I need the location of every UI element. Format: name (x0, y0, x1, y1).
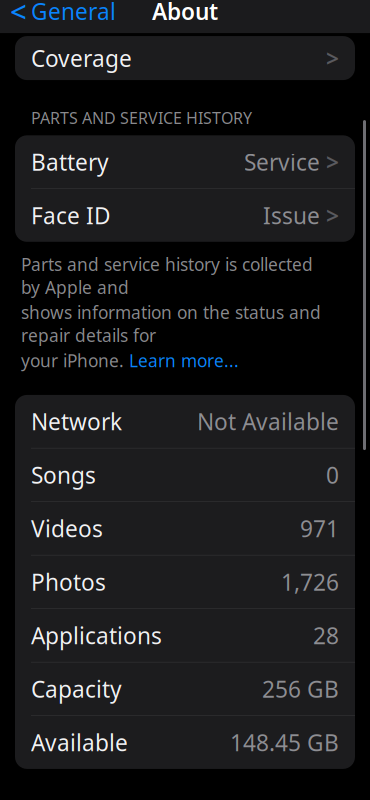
staticText: PARTS AND SERVICE HISTORY (31, 107, 252, 128)
staticText: Battery (31, 147, 109, 177)
staticText: 256 GB (262, 674, 339, 704)
staticText: shows information on the status and repa… (21, 301, 321, 347)
staticText: General (31, 0, 116, 26)
staticText: Parts and service history is collected b… (21, 253, 313, 299)
staticText: > (326, 43, 339, 73)
staticText: Face ID (31, 200, 111, 230)
staticText: Capacity (31, 674, 122, 704)
button[interactable]: Coverage (15, 36, 355, 80)
staticText: Applications (31, 620, 162, 650)
staticText: 28 (313, 620, 339, 650)
staticText: Issue (263, 200, 320, 230)
button[interactable]: < (0, 0, 126, 33)
staticText: 148.45 GB (230, 727, 339, 757)
staticText: Videos (31, 513, 103, 543)
staticText: > (326, 200, 339, 230)
staticText: Songs (31, 460, 96, 490)
staticText: Learn more... (129, 349, 239, 372)
staticText: Not Available (197, 406, 339, 436)
button[interactable]: Learn more... (129, 349, 239, 372)
button[interactable]: Face ID (15, 189, 355, 242)
button[interactable]: Battery (15, 135, 355, 188)
staticText: About (152, 0, 218, 26)
staticText: 1,726 (281, 567, 339, 597)
staticText: Photos (31, 567, 106, 597)
staticText: 971 (300, 513, 339, 543)
staticText: your iPhone. (21, 349, 129, 372)
staticText: 0 (326, 460, 339, 490)
staticText: Service (244, 147, 320, 177)
staticText: Available (31, 727, 128, 757)
staticText: Network (31, 406, 122, 436)
staticText: > (326, 147, 339, 177)
staticText: < (10, 0, 27, 31)
staticText: Coverage (31, 43, 132, 73)
